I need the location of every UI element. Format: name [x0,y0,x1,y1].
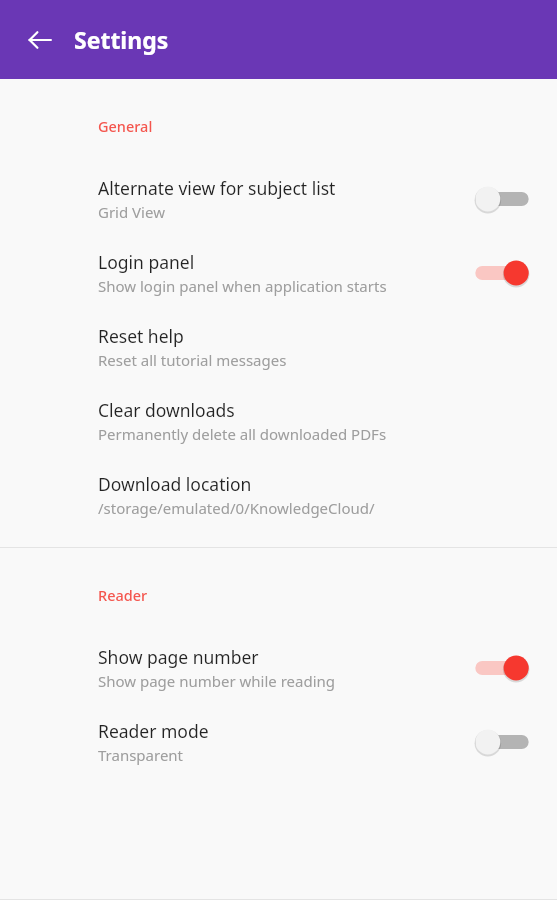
staticText: Alternate view for subject list [98,176,336,200]
staticText: Grid View [98,202,165,222]
staticText: Show page number while reading [98,671,336,691]
staticText: Transparent [98,745,184,765]
button[interactable]: Alternate view for subject list [0,136,557,222]
staticText: Permanently delete all downloaded PDFs [98,424,387,444]
staticText: General [98,116,153,136]
staticText: Reset help [98,324,184,348]
staticText: Reset all tutorial messages [98,350,287,370]
staticText: Show login panel when application starts [98,276,387,296]
button[interactable]: Login panel [0,222,557,296]
staticText: Login panel [98,250,195,274]
button[interactable]: Download location [0,444,557,518]
staticText: /storage/emulated/0/KnowledgeCloud/ [98,498,375,518]
staticText: Reader mode [98,719,209,743]
staticText: Clear downloads [98,398,235,422]
staticText: Download location [98,472,252,496]
button[interactable]: Toggle off [471,178,533,220]
staticText: Settings [74,24,169,55]
staticText: Show page number [98,645,259,669]
button[interactable]: Toggle on [471,252,533,294]
button[interactable]: Clear downloads [0,370,557,444]
button[interactable]: Toggle off [471,721,533,763]
button[interactable]: Back [16,16,64,64]
staticText: Reader [98,585,148,605]
button[interactable]: Reset help [0,296,557,370]
button[interactable]: Show page number [0,605,557,691]
button[interactable]: Toggle on [471,647,533,689]
button[interactable]: Reader mode [0,691,557,765]
